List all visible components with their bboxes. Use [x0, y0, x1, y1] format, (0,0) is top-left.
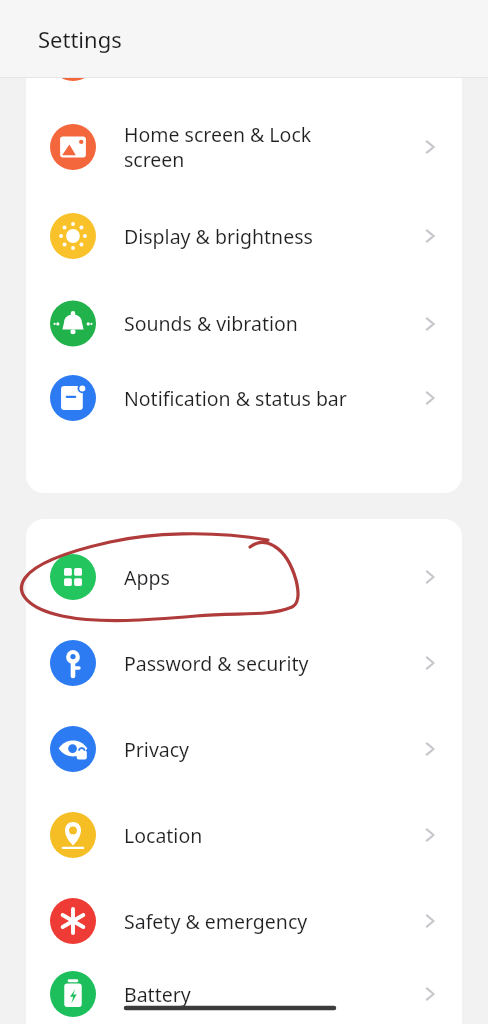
staticText: Sounds & vibration — [124, 310, 298, 337]
button[interactable]: Location — [26, 792, 462, 878]
button[interactable]: Safety & emergency — [26, 878, 462, 964]
staticText: Settings — [38, 24, 122, 54]
staticText: Privacy — [124, 736, 190, 763]
button[interactable]: Privacy — [26, 706, 462, 792]
staticText: Battery — [124, 981, 191, 1008]
staticText: Display & brightness — [124, 223, 313, 250]
button[interactable]: Sounds & vibration — [26, 280, 462, 367]
button[interactable]: Wallpapers & style — [26, 78, 462, 102]
staticText: Notification & status bar — [124, 385, 347, 412]
button[interactable]: Home screen & Lock screen — [26, 102, 462, 192]
button[interactable]: Notification & status bar — [26, 367, 462, 429]
button[interactable]: Apps — [26, 534, 462, 620]
staticText: Password & security — [124, 650, 309, 677]
staticText: Apps — [124, 564, 170, 591]
staticText: Home screen & Lock screen — [124, 121, 312, 173]
button[interactable]: Battery — [26, 964, 462, 1024]
staticText: Safety & emergency — [124, 908, 308, 935]
button[interactable]: Display & brightness — [26, 192, 462, 280]
button[interactable]: Password & security — [26, 620, 462, 706]
staticText: Location — [124, 822, 203, 849]
